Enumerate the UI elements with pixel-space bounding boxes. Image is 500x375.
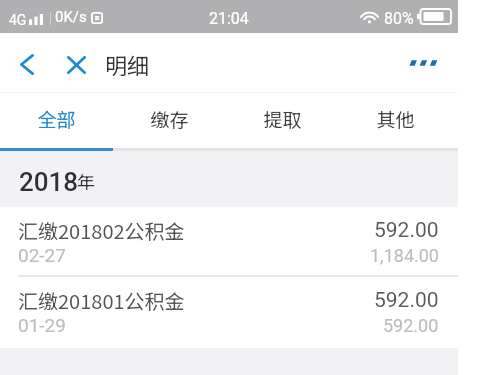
staticText: 全部 xyxy=(37,105,76,133)
staticText: 0K/s xyxy=(55,8,87,26)
button[interactable]: 其他 xyxy=(339,91,452,146)
staticText: 80% xyxy=(384,9,414,28)
staticText: 年 xyxy=(77,168,95,194)
staticText: 592.00 xyxy=(374,288,439,313)
staticText: 其他 xyxy=(376,105,415,133)
staticText: 592.00 xyxy=(383,315,439,336)
staticText: 2018 xyxy=(19,167,79,197)
staticText: 592.00 xyxy=(374,218,439,243)
button[interactable]: 缴存 xyxy=(113,91,226,146)
button[interactable]: 汇缴201802公积金 xyxy=(0,207,458,277)
staticText: 4G xyxy=(9,12,27,28)
staticText: 提取 xyxy=(263,105,302,133)
staticText: 02-27 xyxy=(18,244,66,266)
button[interactable]: 提取 xyxy=(226,91,339,146)
staticText: 1,184.00 xyxy=(370,245,439,266)
button[interactable]: Back xyxy=(8,43,46,85)
staticText: 缴存 xyxy=(150,105,189,133)
button[interactable]: More options xyxy=(397,42,443,84)
button[interactable]: 全部 xyxy=(0,91,113,146)
staticText: 01-29 xyxy=(18,314,66,336)
button[interactable]: Close xyxy=(56,44,96,86)
staticText: 汇缴201802公积金 xyxy=(18,216,185,245)
staticText: 汇缴201801公积金 xyxy=(18,286,185,315)
staticText: 明细 xyxy=(105,48,150,80)
staticText: 21:04 xyxy=(209,9,249,28)
button[interactable]: 汇缴201801公积金 xyxy=(0,277,458,348)
